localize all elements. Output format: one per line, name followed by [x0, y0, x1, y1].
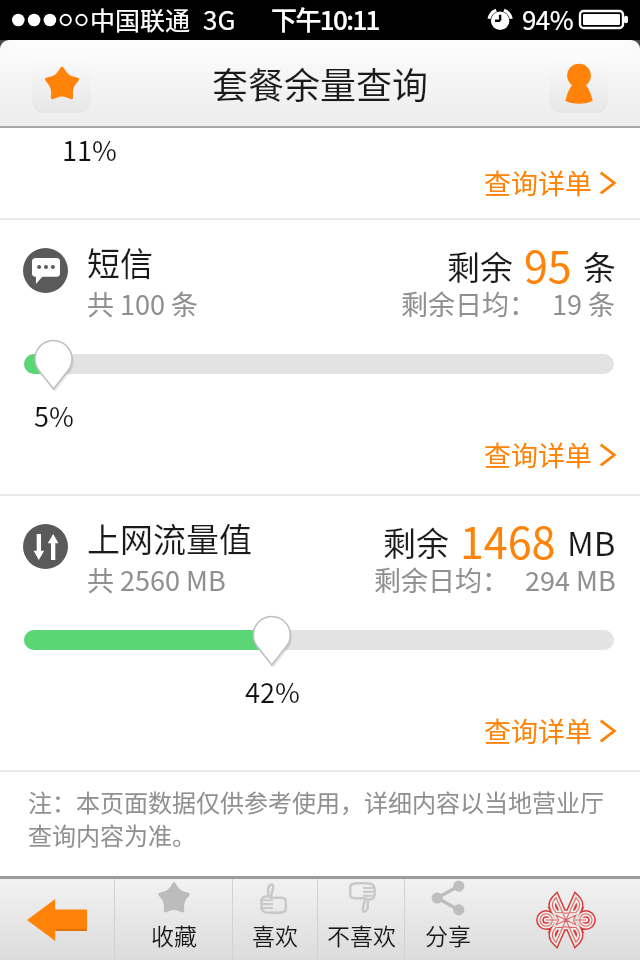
staticText: 共 100 条 — [87, 284, 199, 323]
button[interactable]: 收藏 — [115, 879, 232, 960]
staticText: 19 条 — [552, 284, 616, 323]
button[interactable]: 中国联通 — [491, 879, 640, 960]
staticText: 不喜欢 — [327, 918, 396, 951]
staticText: 下午10:11 — [271, 0, 379, 38]
staticText: 上网流量值 — [87, 514, 252, 562]
button[interactable]: 查询详单 — [484, 163, 616, 202]
button[interactable]: 分享 — [405, 879, 491, 960]
staticText: 收藏 — [151, 918, 197, 951]
staticText: 剩余 — [447, 242, 513, 290]
button[interactable]: 喜欢 — [233, 879, 317, 960]
staticText: 294 MB — [525, 560, 616, 599]
button[interactable]: 查询详单 — [484, 711, 616, 750]
staticText: 查询详单 — [484, 435, 592, 474]
staticText: 中国联通 — [90, 1, 191, 37]
staticText: 11% — [62, 130, 117, 169]
staticText: 查询详单 — [484, 163, 592, 202]
staticText: 注：本页面数据仅供参考使用，详细内容以当地营业厅 — [28, 784, 604, 819]
staticText: 短信 — [87, 238, 153, 286]
button[interactable]: 个人中心 — [549, 54, 608, 113]
staticText: 剩余日均： — [401, 284, 536, 323]
staticText: 分享 — [425, 918, 471, 951]
staticText: 3G — [203, 0, 236, 38]
button[interactable]: 不喜欢 — [318, 879, 404, 960]
staticText: 剩余日均： — [374, 560, 509, 599]
staticText: 94% — [522, 0, 574, 38]
staticText: 查询内容为准。 — [28, 817, 196, 852]
staticText: 42% — [245, 672, 300, 711]
staticText: MB — [567, 518, 616, 566]
staticText: 查询详单 — [484, 711, 592, 750]
staticText: 套餐余量查询 — [212, 57, 429, 109]
button[interactable]: 查询详单 — [484, 435, 616, 474]
staticText: 条 — [583, 242, 616, 290]
staticText: 95 — [524, 233, 572, 295]
button[interactable]: 返回 — [0, 879, 114, 960]
other: 闹钟 — [490, 8, 512, 30]
staticText: 剩余 — [383, 518, 449, 566]
staticText: 喜欢 — [252, 918, 298, 951]
staticText: 5% — [34, 396, 74, 435]
staticText: 1468 — [460, 509, 556, 571]
button[interactable]: 收藏 — [32, 54, 91, 113]
staticText: 共 2560 MB — [87, 560, 226, 599]
